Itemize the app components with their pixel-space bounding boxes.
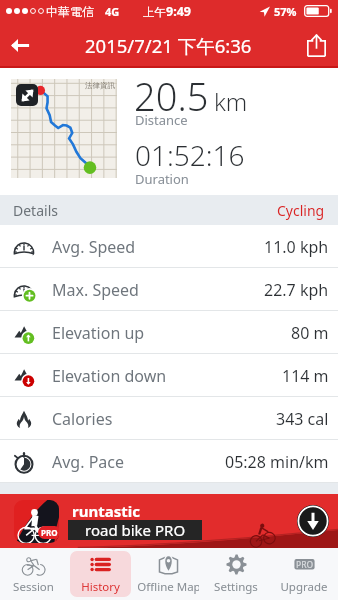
staticText: Cycling [277, 201, 325, 220]
staticText: Elevation down [52, 365, 167, 387]
staticText: 80 m [291, 322, 329, 344]
staticText: Max. Speed [52, 279, 139, 301]
staticText: km [214, 85, 248, 118]
button[interactable]: Back [0, 22, 42, 68]
staticText: 01:52:16 [135, 136, 245, 174]
staticText: Calories [52, 408, 113, 430]
staticText: runtastic [72, 501, 140, 521]
staticText: PRO [296, 559, 314, 571]
button[interactable]: Expand map [16, 84, 38, 106]
staticText: Settings [214, 579, 258, 595]
staticText: Elevation up [52, 322, 145, 344]
button[interactable]: History [70, 551, 131, 597]
staticText: Duration [135, 170, 189, 188]
staticText: 20.5 [134, 70, 209, 122]
staticText: 57% [274, 4, 297, 19]
staticText: PRO [41, 527, 58, 538]
staticText: 上午 [143, 5, 166, 19]
button[interactable]: Offline Map [137, 551, 199, 597]
staticText: road bike PRO [85, 520, 186, 540]
staticText: Avg. Speed [52, 236, 136, 258]
button[interactable]: Max. Speed [0, 268, 338, 311]
button[interactable]: Calories [0, 397, 338, 440]
staticText: Distance [135, 111, 188, 129]
staticText: 114 m [282, 365, 329, 387]
button[interactable]: Avg. Pace [0, 440, 338, 483]
button[interactable]: Elevation down [0, 354, 338, 397]
button[interactable]: Avg. Speed [0, 225, 338, 268]
staticText: Details [13, 201, 58, 220]
button[interactable]: Elevation up [0, 311, 338, 354]
button[interactable]: PRO [0, 494, 338, 548]
button[interactable]: Share [294, 22, 338, 68]
button[interactable]: Session [3, 551, 64, 597]
staticText: 4G [105, 4, 120, 19]
staticText: 22.7 kph [264, 279, 329, 301]
staticText: Avg. Pace [52, 451, 125, 473]
staticText: 05:28 min/km [225, 451, 329, 473]
button[interactable]: Settings [205, 551, 267, 597]
staticText: 11.0 kph [264, 236, 329, 258]
staticText: 法律資訊 [85, 81, 115, 90]
staticText: 2015/7/21 下午6:36 [85, 33, 252, 58]
staticText: History [81, 579, 120, 595]
button[interactable]: PRO [273, 551, 335, 597]
staticText: 9:49 [166, 3, 191, 20]
staticText: Upgrade [280, 579, 328, 595]
staticText: Offline Map [137, 579, 199, 595]
staticText: 中華電信 [46, 4, 94, 19]
staticText: 343 cal [276, 408, 329, 430]
button[interactable]: Download [297, 505, 329, 537]
staticText: Session [13, 579, 54, 595]
